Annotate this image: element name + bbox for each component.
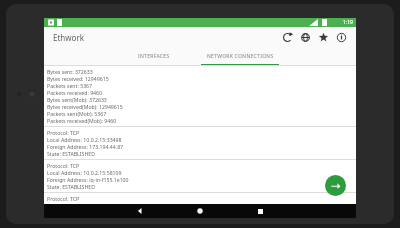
button[interactable]: NETWORK CONNECTIONS (194, 47, 286, 66)
staticText: Packets sent(Mob): 5367 (47, 110, 107, 117)
button[interactable]: Bytes sent: 372633 (44, 66, 356, 126)
button[interactable]: Recents (252, 204, 268, 218)
staticText: Packets received(Mob): 9460 (47, 117, 117, 124)
button[interactable]: About (332, 28, 350, 46)
staticText: 1:19 (343, 19, 353, 26)
staticText: Bytes sent(Mob): 372633 (47, 96, 107, 103)
staticText: State: ESTABLISHED (47, 183, 95, 190)
staticText: Protocol: TCP (47, 162, 80, 169)
staticText: Ethwork (53, 32, 84, 43)
staticText: State: ESTABLISHED (47, 150, 95, 157)
staticText: Protocol: TCP (47, 195, 80, 202)
staticText: Foreign Address: 173.194.44.87 (47, 143, 124, 150)
button[interactable]: Favorite (314, 28, 332, 46)
staticText: NETWORK CONNECTIONS (207, 53, 274, 60)
staticText: Bytes received: 12949615 (47, 75, 109, 82)
staticText: Local Address: 10.0.2.15:58109 (47, 169, 122, 176)
button[interactable]: INTERFACES (114, 47, 194, 66)
button[interactable]: Share (325, 175, 346, 196)
staticText: Bytes sent: 372633 (47, 68, 93, 75)
button[interactable]: Home (192, 204, 208, 218)
button[interactable]: Protocol: TCP (44, 193, 356, 204)
staticText: Local Address: 10.0.2.15:33498 (47, 136, 122, 143)
button[interactable]: Protocol: TCP (44, 127, 356, 159)
staticText: Foreign Address: lq-in-f155.1e100 (47, 176, 129, 183)
button[interactable]: Refresh (278, 28, 296, 46)
staticText: Protocol: TCP (47, 129, 80, 136)
button[interactable]: Protocol: TCP (44, 160, 356, 192)
staticText: Bytes received(Mob): 12949615 (47, 103, 123, 110)
button[interactable]: Back (132, 204, 148, 218)
button[interactable]: Globe (296, 28, 314, 46)
staticText: Packets sent: 5367 (47, 82, 93, 89)
staticText: INTERFACES (138, 53, 170, 60)
staticText: Packets received: 9460 (47, 89, 103, 96)
